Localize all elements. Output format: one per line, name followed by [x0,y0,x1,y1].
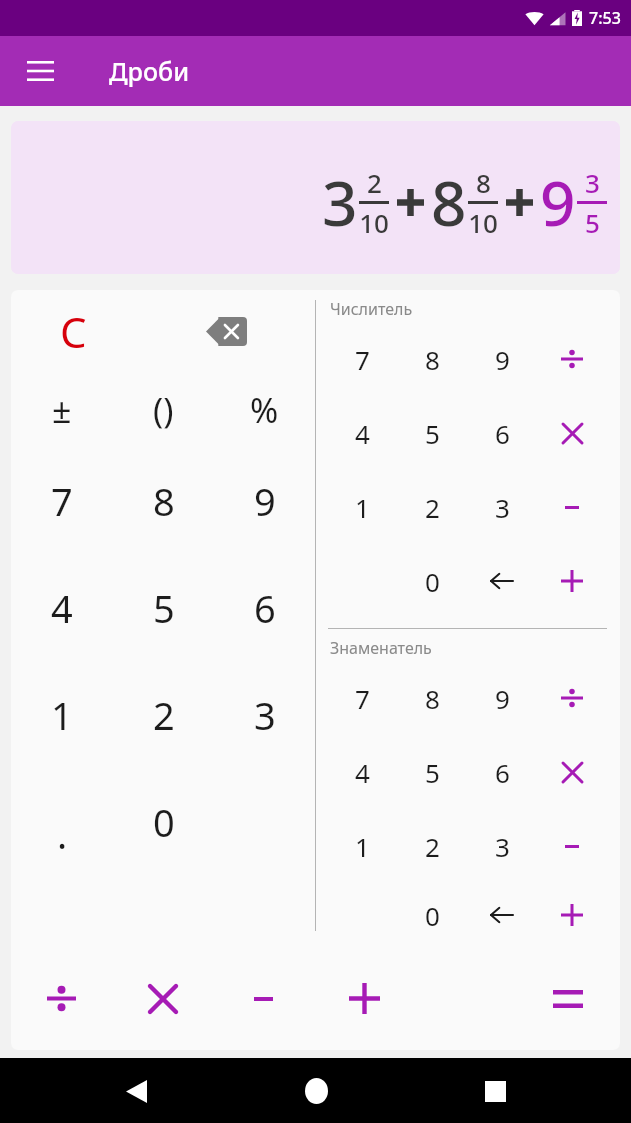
staticText: 7:53 [589,7,621,29]
staticText: 1 [355,490,370,525]
button[interactable]: 0 [397,544,467,618]
button[interactable]: 9 [467,661,537,735]
button[interactable]: . [11,768,113,875]
button[interactable]: 1 [328,809,397,883]
staticText: 5 [153,582,175,634]
button[interactable]: 1 [11,661,113,768]
staticText: 9 [495,342,510,377]
button[interactable]: Backspace [194,305,258,357]
button[interactable]: 1 [328,470,397,544]
staticText: 2 [153,689,175,741]
staticText: 7 [355,681,370,716]
staticText: 3 [495,829,510,864]
button[interactable]: Open navigation menu [14,45,66,97]
button[interactable]: 0 [113,768,214,875]
staticText: 6 [495,755,510,790]
staticText: Знаменатель [330,637,432,659]
button[interactable]: 9 [467,322,537,396]
staticText: 1 [51,689,73,741]
staticText: 3 [585,165,600,200]
button[interactable]: 3 [467,809,537,883]
staticText: 6 [254,582,276,634]
button[interactable]: 5 [397,396,467,470]
button[interactable]: Divide [537,322,607,396]
staticText: 10 [359,205,389,240]
staticText: 9 [495,681,510,716]
button[interactable]: Backspace [467,544,537,618]
staticText: 4 [51,582,73,634]
staticText: Дроби [109,54,190,88]
staticText: 2 [425,829,440,864]
staticText: 2 [367,165,382,200]
button[interactable]: % [214,372,315,447]
button[interactable]: Equals [516,947,620,1050]
button[interactable]: 2 [397,470,467,544]
staticText: 0 [153,796,175,848]
button[interactable]: 7 [328,661,397,735]
button[interactable]: 3 [214,661,315,768]
staticText: 3 [322,160,358,244]
staticText: 7 [355,342,370,377]
button[interactable]: Back [107,1062,165,1120]
button[interactable]: 8 [113,447,214,554]
button[interactable]: Add [537,544,607,618]
button[interactable]: Multiply [537,735,607,809]
staticText: 9 [540,160,576,244]
button[interactable]: 9 [214,447,315,554]
button[interactable]: Subtract [537,470,607,544]
staticText: 8 [425,681,440,716]
button[interactable]: Add [314,947,415,1050]
button[interactable]: Multiply [112,947,213,1050]
button[interactable]: Subtract [537,809,607,883]
staticText: () [153,387,174,433]
button[interactable]: 8 [397,322,467,396]
staticText: 3 [254,689,276,741]
button[interactable]: 2 [397,809,467,883]
button[interactable]: () [113,372,214,447]
staticText: 5 [585,205,600,240]
button[interactable]: Home [287,1062,345,1120]
button[interactable]: 7 [328,322,397,396]
button[interactable]: 7 [11,447,113,554]
button[interactable]: Divide [11,947,112,1050]
button[interactable]: C [41,299,105,363]
button[interactable]: Add [537,883,607,947]
button[interactable]: 0 [397,883,467,947]
staticText: 8 [153,475,175,527]
button[interactable]: 4 [11,554,113,661]
staticText: 0 [425,564,440,599]
button[interactable]: 6 [467,735,537,809]
staticText: 2 [425,490,440,525]
staticText: . [57,808,68,860]
button[interactable]: 8 [397,661,467,735]
staticText: 1 [355,829,370,864]
staticText: % [250,387,279,433]
button[interactable]: Divide [537,661,607,735]
staticText: 8 [431,160,467,244]
button[interactable]: 4 [328,735,397,809]
button[interactable]: 6 [214,554,315,661]
button[interactable]: Backspace [467,883,537,947]
staticText: 6 [495,416,510,451]
staticText: 9 [254,475,276,527]
button[interactable]: 2 [113,661,214,768]
button[interactable]: 4 [328,396,397,470]
button[interactable]: Multiply [537,396,607,470]
staticText: ± [52,387,72,433]
button[interactable]: 5 [397,735,467,809]
staticText: 5 [425,416,440,451]
button[interactable]: 6 [467,396,537,470]
staticText: 8 [476,165,491,200]
button[interactable]: ± [11,372,113,447]
staticText: 4 [355,755,370,790]
staticText: 7 [51,475,73,527]
staticText: 5 [425,755,440,790]
staticText: 0 [425,898,440,933]
button[interactable]: Subtract [213,947,314,1050]
button[interactable]: 3 [11,121,620,274]
button[interactable]: Recent apps [466,1062,524,1120]
staticText: 8 [425,342,440,377]
staticText: 3 [495,490,510,525]
button[interactable]: 5 [113,554,214,661]
button[interactable]: 3 [467,470,537,544]
